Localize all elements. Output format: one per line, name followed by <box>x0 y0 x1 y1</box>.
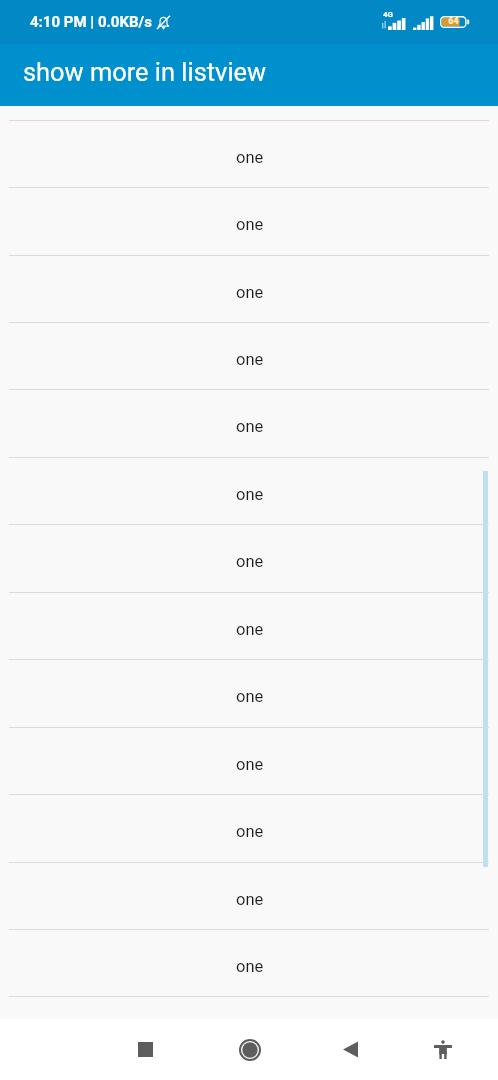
button[interactable]: one <box>0 120 498 187</box>
staticText: one <box>236 552 264 571</box>
button[interactable]: one <box>0 457 498 524</box>
button[interactable]: Recent apps <box>115 1019 176 1080</box>
staticText: one <box>236 417 264 436</box>
staticText: one <box>236 350 264 369</box>
button[interactable]: one <box>0 862 498 929</box>
staticText: 4:10 PM | 0.0KB/s <box>30 13 152 31</box>
button[interactable]: one <box>0 794 498 861</box>
button[interactable]: one <box>0 929 498 996</box>
button[interactable]: one <box>0 592 498 659</box>
button[interactable]: one <box>0 727 498 794</box>
staticText: one <box>236 620 264 639</box>
button[interactable]: Accessibility <box>412 1019 473 1080</box>
staticText: one <box>236 755 264 774</box>
button[interactable]: Home <box>219 1019 280 1080</box>
staticText: one <box>236 215 264 234</box>
staticText: one <box>236 283 264 302</box>
button[interactable]: one <box>0 659 498 726</box>
button[interactable]: one <box>0 322 498 389</box>
staticText: one <box>236 890 264 909</box>
staticText: one <box>236 687 264 706</box>
button[interactable]: Back <box>320 1019 381 1080</box>
button[interactable]: one <box>0 255 498 322</box>
button[interactable]: one <box>0 187 498 254</box>
staticText: one <box>236 485 264 504</box>
staticText: one <box>236 957 264 976</box>
staticText: one <box>236 822 264 841</box>
button[interactable]: one <box>0 389 498 456</box>
button[interactable]: one <box>0 524 498 591</box>
staticText: one <box>236 148 264 167</box>
staticText: show more in listview <box>23 57 267 87</box>
staticText: 4G <box>383 10 394 19</box>
staticText: 64 <box>440 16 467 27</box>
